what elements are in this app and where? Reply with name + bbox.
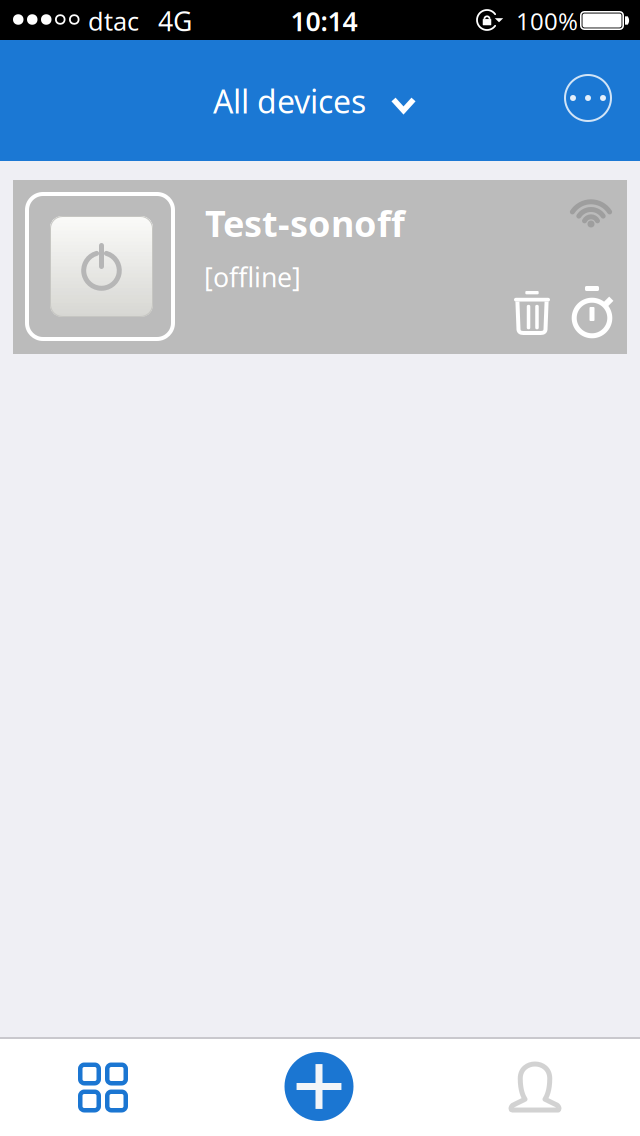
button[interactable]: Delete (514, 291, 550, 335)
staticText: dtac (88, 4, 139, 38)
button[interactable]: Devices (26, 1039, 180, 1136)
staticText: 10:14 (290, 3, 357, 39)
staticText: 4G (158, 3, 192, 39)
staticText: [offline] (204, 259, 301, 295)
button[interactable]: All devices (199, 73, 425, 129)
button[interactable]: Power (25, 192, 175, 341)
staticText: Test-sonoff (205, 199, 405, 247)
button[interactable]: More options (564, 74, 612, 122)
button[interactable]: Add device (242, 1038, 396, 1135)
staticText: All devices (213, 80, 366, 122)
staticText: 100% (516, 5, 578, 37)
button[interactable]: Profile (458, 1039, 612, 1136)
button[interactable]: Timer (570, 286, 614, 335)
